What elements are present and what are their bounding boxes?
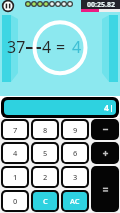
button[interactable]: 9 [63,121,87,138]
button[interactable]: Minus [91,119,119,140]
staticText: 37 [7,36,26,58]
button[interactable]: 3 [63,168,87,186]
button[interactable]: 6 [63,144,87,162]
staticText: 4 [104,102,109,114]
button[interactable]: Equals [91,166,119,212]
staticText: 3 [73,172,78,182]
button[interactable]: 2 [33,168,57,186]
button[interactable]: 1 [3,168,27,186]
staticText: 0 [13,196,18,206]
button[interactable]: 4 [4,100,116,115]
button[interactable]: 5 [33,144,57,162]
staticText: 5 [43,148,48,158]
staticText: 00:25.82 [87,0,115,9]
button[interactable]: AC [63,192,87,210]
button[interactable]: 7 [3,121,27,138]
staticText: = [56,36,66,58]
staticText: 1 [13,172,18,182]
button[interactable]: C [33,192,57,210]
staticText: 9 [73,125,78,135]
staticText: 4 [42,36,52,58]
staticText: 4 [72,36,82,58]
staticText: AC [70,196,80,206]
staticText: 2 [43,172,48,182]
button[interactable]: 8 [33,121,57,138]
staticText: 7 [13,125,18,135]
staticText: 4 [13,148,18,158]
button[interactable]: 0 [3,192,27,210]
staticText: 6 [73,148,78,158]
button[interactable]: 4 [3,144,27,162]
staticText: 8 [43,125,48,135]
button[interactable]: Pause [1,0,15,14]
button[interactable]: Plus [91,142,119,164]
staticText: C [43,196,48,206]
